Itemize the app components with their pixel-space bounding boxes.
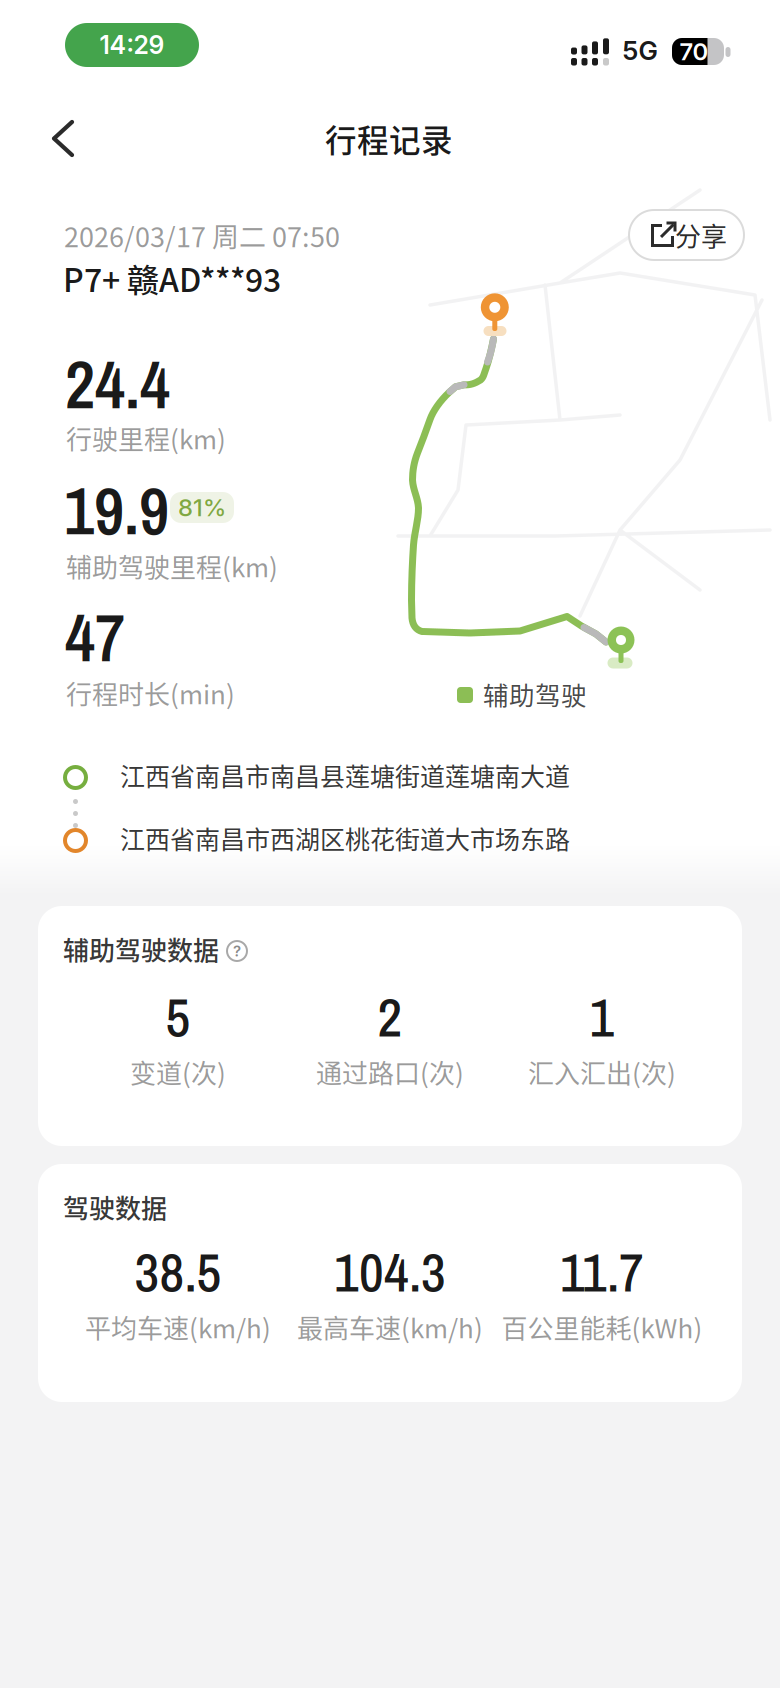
staticText: ? (233, 942, 241, 960)
staticText: 24.4 (65, 340, 170, 429)
staticText: 分享 (675, 216, 727, 254)
staticText: 辅助驾驶 (483, 675, 587, 712)
staticText: 平均车速(km/h) (85, 1308, 271, 1346)
staticText: 最高车速(km/h) (297, 1308, 483, 1346)
staticText: 2 (377, 981, 402, 1053)
staticText: 38.5 (134, 1236, 221, 1308)
staticText: 辅助驾驶里程(km) (66, 547, 278, 585)
staticText: 5G (622, 35, 657, 66)
staticText: 变道(次) (130, 1053, 226, 1091)
staticText: 行驶里程(km) (66, 419, 226, 457)
staticText: 70 (679, 37, 708, 66)
staticText: 辅助驾驶数据 (63, 930, 219, 968)
staticText: 19.9 (64, 466, 169, 555)
staticText: 驾驶数据 (63, 1188, 167, 1226)
staticText: 5 (165, 981, 190, 1053)
staticText: 汇入汇出(次) (528, 1053, 676, 1091)
staticText: 2026/03/17 周二 07:50 (64, 216, 340, 255)
staticText: 行程时长(min) (66, 674, 235, 712)
staticText: 81% (178, 493, 226, 522)
staticText: 百公里能耗(kWh) (501, 1308, 702, 1346)
staticText: 通过路口(次) (316, 1053, 464, 1091)
staticText: 1 (589, 981, 614, 1053)
staticText: 11.7 (560, 1236, 644, 1308)
staticText: 47 (65, 593, 125, 682)
staticText: 江西省南昌市西湖区桃花街道大市场东路 (120, 820, 570, 856)
staticText: 104.3 (334, 1236, 446, 1308)
staticText: 江西省南昌市南昌县莲塘街道莲塘南大道 (120, 757, 570, 793)
staticText: 14:29 (99, 30, 164, 60)
staticText: 行程记录 (325, 116, 453, 161)
staticText: P7+ 赣AD***93 (63, 255, 281, 301)
